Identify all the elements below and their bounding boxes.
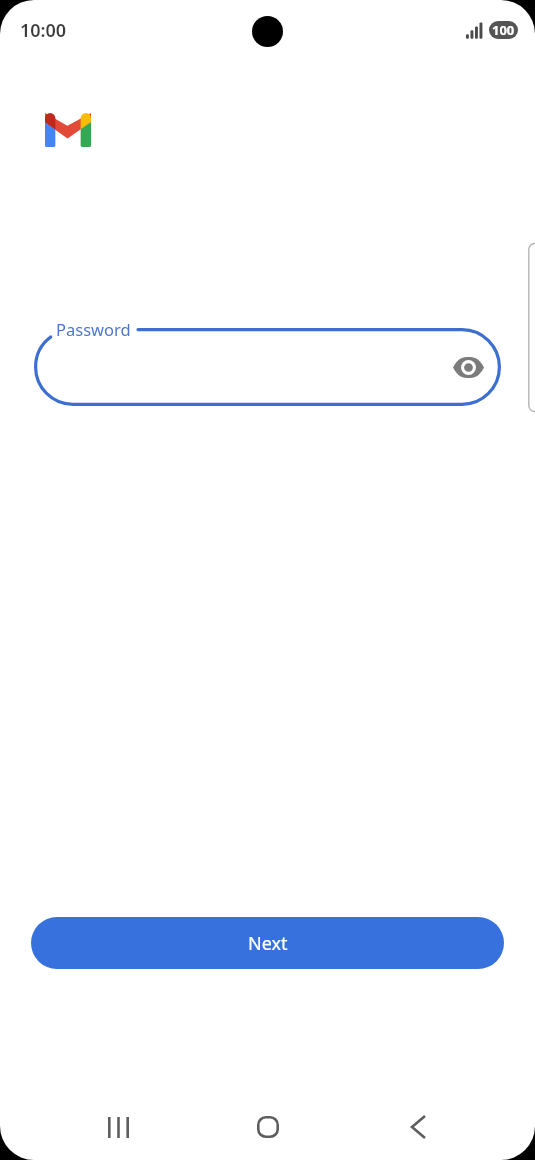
button[interactable]: Home bbox=[232, 1105, 304, 1149]
staticText: 10:00 bbox=[20, 18, 67, 43]
button[interactable]: Back bbox=[382, 1105, 454, 1149]
staticText: Next bbox=[248, 931, 288, 956]
staticText: Password bbox=[56, 318, 131, 340]
button[interactable]: Next bbox=[31, 917, 504, 969]
button[interactable]: Show password bbox=[446, 345, 490, 389]
staticText: 100 bbox=[492, 21, 515, 39]
button[interactable]: Recents bbox=[82, 1105, 154, 1149]
